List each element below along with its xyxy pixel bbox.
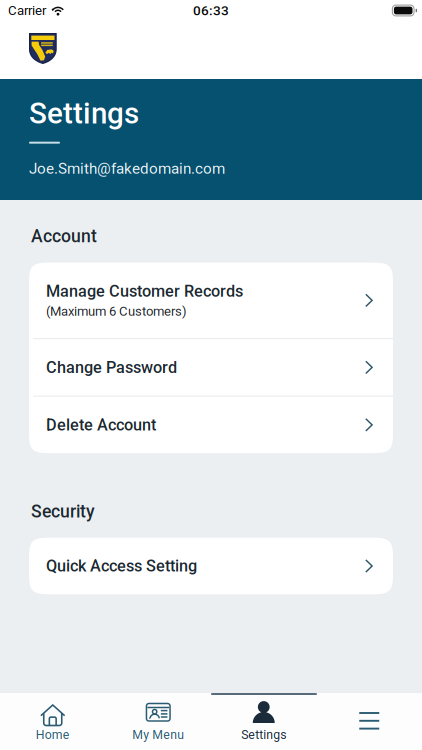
button[interactable]: Menu [316, 693, 422, 750]
staticText: Change Password [46, 358, 177, 377]
staticText: Security [31, 501, 95, 522]
staticText: Delete Account [46, 415, 156, 434]
staticText: Settings [29, 96, 139, 131]
staticText: Manage Customer Records [46, 282, 243, 301]
button[interactable]: Settings [211, 693, 316, 750]
staticText: 06:33 [193, 2, 229, 18]
staticText: (Maximum 6 Customers) [46, 304, 187, 319]
button[interactable]: Delete Account [29, 397, 393, 453]
button[interactable]: Manage Customer Records [29, 263, 393, 338]
staticText: Carrier [8, 3, 46, 18]
staticText: Quick Access Setting [46, 556, 197, 576]
staticText: Settings [241, 728, 286, 742]
staticText: Home [36, 728, 70, 742]
button[interactable]: Home [0, 693, 105, 750]
button[interactable]: My Menu [105, 693, 211, 750]
staticText: Account [31, 226, 97, 247]
button[interactable]: Change Password [29, 339, 393, 396]
staticText: My Menu [132, 728, 184, 742]
button[interactable]: Quick Access Setting [29, 538, 393, 594]
staticText: Joe.Smith@fakedomain.com [29, 160, 225, 177]
